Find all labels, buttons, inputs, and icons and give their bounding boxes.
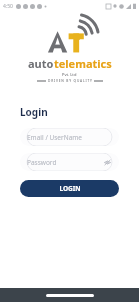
button[interactable]: Email / UserName (20, 128, 119, 146)
button[interactable]: Toggle password visibility (102, 157, 112, 167)
staticText: Login (20, 105, 48, 119)
staticText: LOGIN (59, 184, 81, 193)
staticText: telematics (54, 56, 112, 71)
staticText: auto (28, 56, 54, 71)
staticText: Email / UserName (27, 133, 83, 142)
staticText: Pvt. Ltd (62, 72, 77, 77)
staticText: Password (27, 158, 57, 167)
staticText: 4:50 (3, 3, 13, 10)
button[interactable]: LOGIN (20, 180, 119, 197)
button[interactable]: Password (20, 153, 119, 171)
staticText: D R I V E N B Y Q U A L I T Y (48, 79, 92, 83)
